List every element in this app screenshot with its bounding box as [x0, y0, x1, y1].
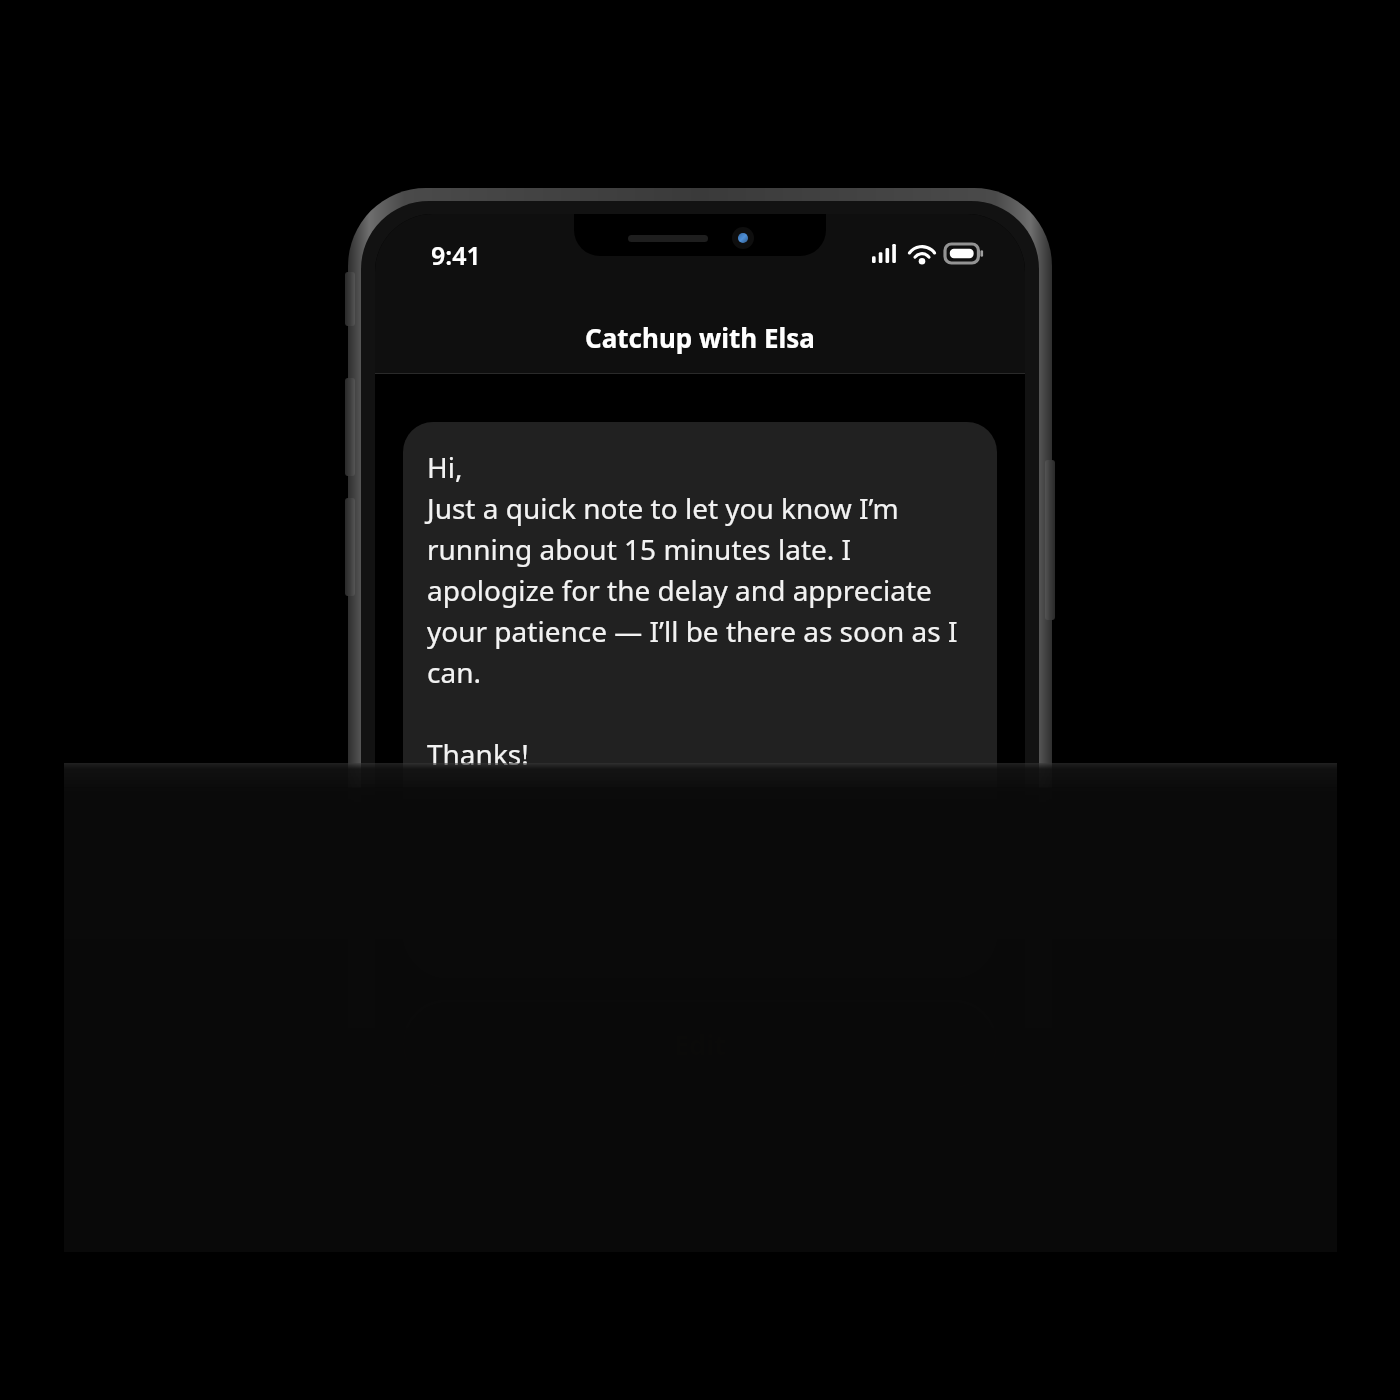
staticText: 9:41	[431, 238, 481, 272]
staticText: Hi, Just a quick note to let you know I’…	[427, 448, 977, 773]
staticText: Catchup with Elsa	[585, 320, 815, 355]
button[interactable]: Hi, Just a quick note to let you know I’…	[403, 422, 997, 850]
